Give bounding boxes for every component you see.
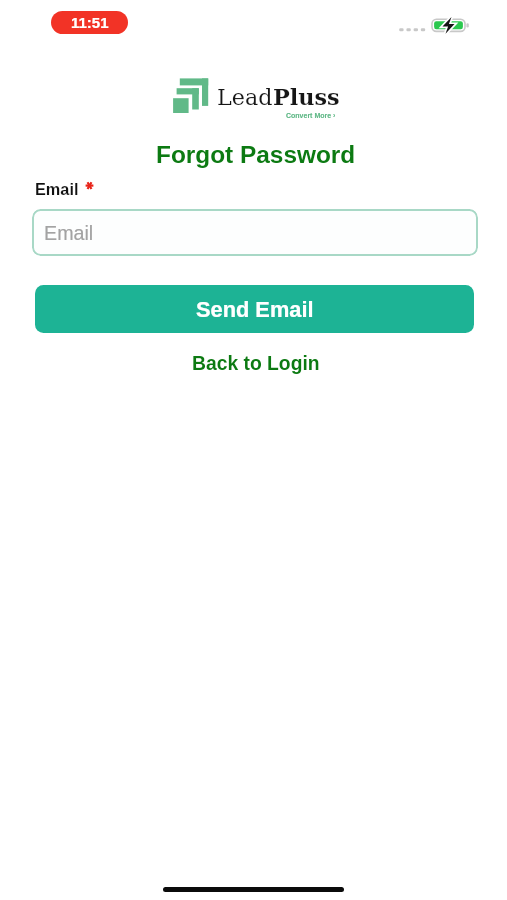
staticText: Convert More › bbox=[286, 112, 336, 120]
staticText: 11:51 bbox=[71, 14, 109, 31]
other: Signal bbox=[396, 24, 428, 36]
staticText: Forgot Password bbox=[156, 141, 356, 168]
staticText: Pluss bbox=[273, 84, 340, 110]
staticText: Send Email bbox=[196, 297, 314, 321]
other: Required bbox=[85, 180, 94, 193]
button[interactable]: Email input field bbox=[32, 209, 478, 256]
staticText: Lead bbox=[217, 84, 273, 110]
other: LeadPluss logo bbox=[173, 77, 209, 114]
other: Battery charging bbox=[428, 14, 472, 38]
button[interactable]: Send Email bbox=[35, 285, 474, 333]
staticText: Email bbox=[44, 222, 94, 244]
staticText: Back to Login bbox=[192, 353, 320, 375]
button[interactable]: Back to Login bbox=[182, 349, 330, 379]
staticText: Email bbox=[35, 180, 79, 198]
